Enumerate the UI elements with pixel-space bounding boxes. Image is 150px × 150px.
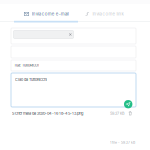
button[interactable]: Invia come link <box>85 8 131 19</box>
staticText: 1 file - 59.27 kB <box>110 140 135 145</box>
staticText: Tua: TuttoRicch <box>14 63 39 67</box>
staticText: 59.27 kB <box>110 111 125 116</box>
button[interactable]: Invia come e-mail <box>24 8 72 19</box>
button[interactable]: Remove attachment <box>128 111 132 115</box>
button[interactable]: Remove recipient <box>69 33 72 36</box>
staticText: Schermata da 2020-04-16 18-45-13.png <box>12 111 83 116</box>
button[interactable]: Send <box>124 100 132 108</box>
staticText: Invia come link <box>92 11 123 17</box>
staticText: Invia come e-mail <box>32 11 69 17</box>
staticText: Ciao da TuttoRicchi <box>15 77 47 82</box>
